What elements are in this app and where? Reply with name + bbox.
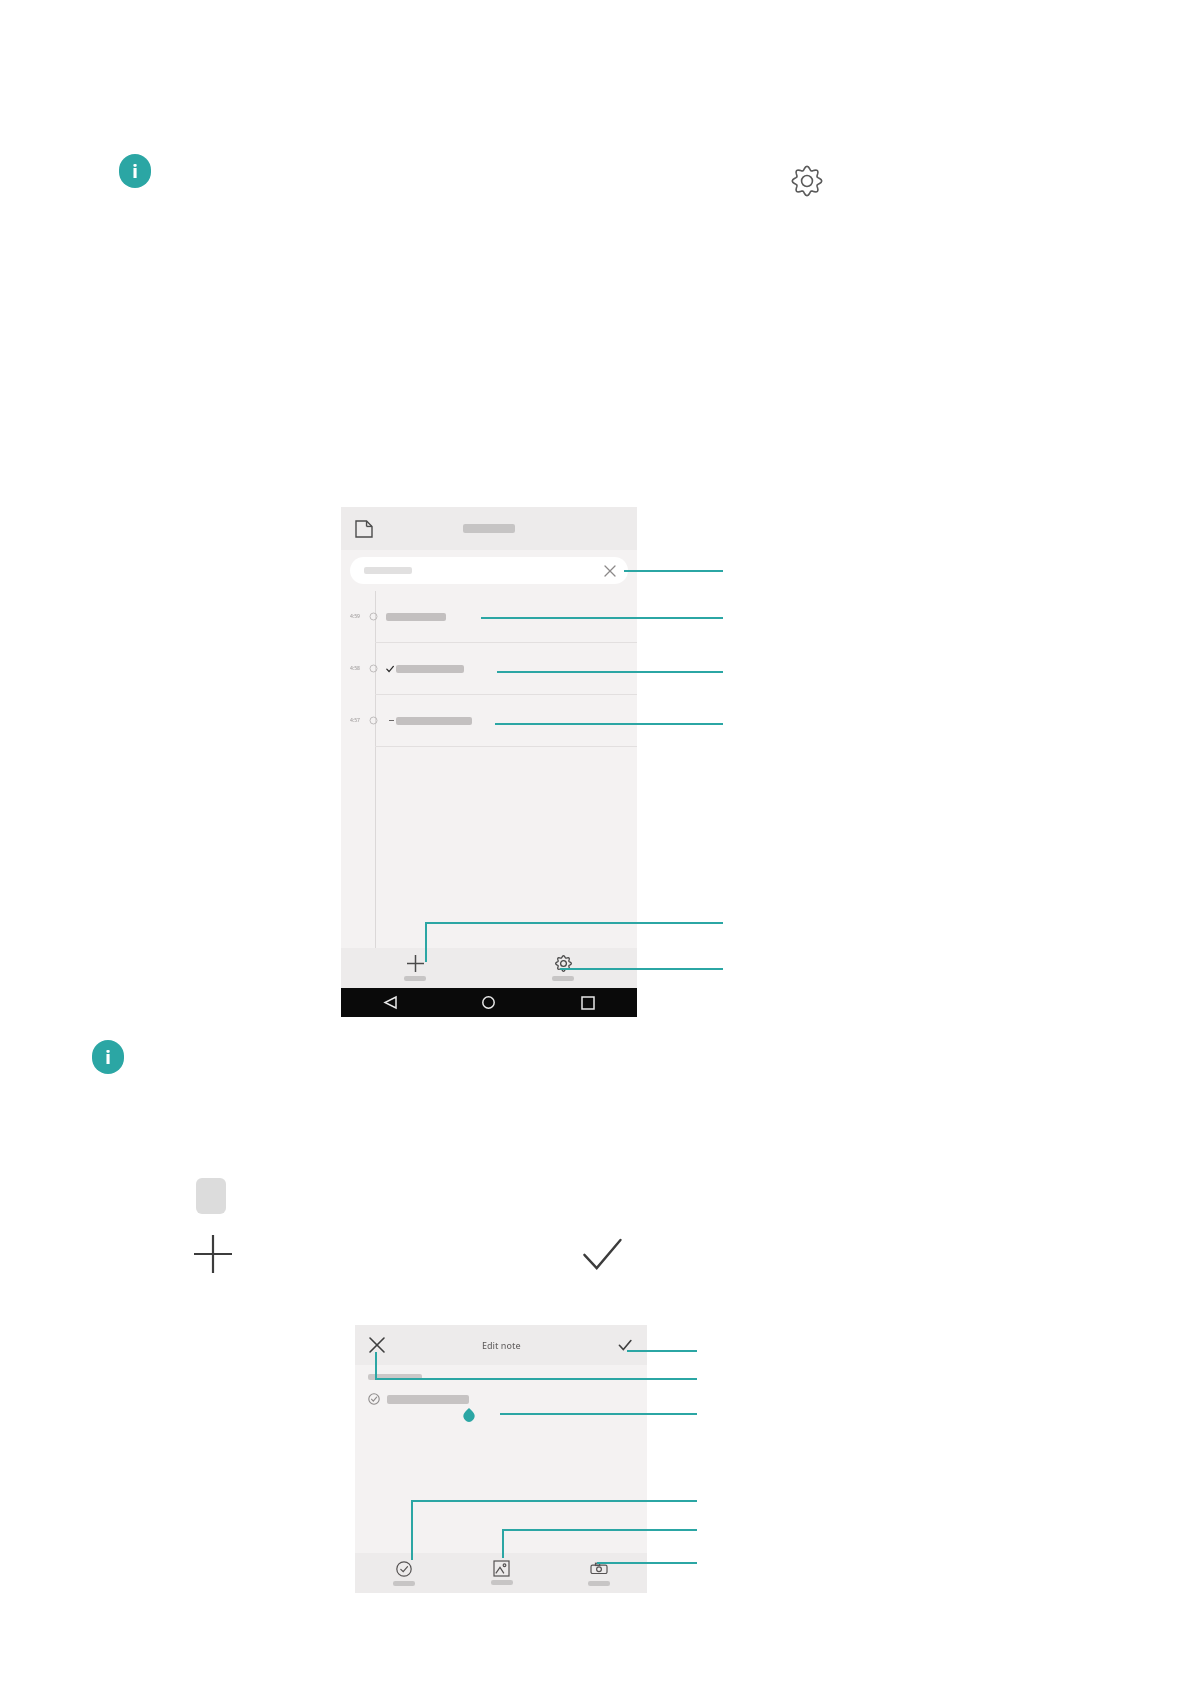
button[interactable] [550,1553,647,1593]
button[interactable]: Clear [602,563,618,579]
staticText: i [132,160,138,183]
button[interactable]: Folders [353,518,375,540]
button[interactable]: Close [366,1334,388,1356]
staticText: i [105,1046,111,1069]
button[interactable] [489,948,637,988]
button[interactable]: 4:58 [341,643,637,694]
button[interactable] [453,1553,550,1593]
button[interactable] [341,948,489,988]
button[interactable]: Clear [350,557,628,584]
staticText: 4:59 [350,613,369,620]
button[interactable]: 4:57 [341,695,637,746]
staticText: 4:57 [350,717,369,724]
staticText: 4:58 [350,665,369,672]
staticText: Edit note [482,1339,521,1351]
button[interactable]: 4:59 [341,591,637,642]
button[interactable]: Settings [789,163,825,199]
button[interactable]: Home [439,988,538,1017]
button[interactable]: Recents [538,988,637,1017]
button[interactable]: Save [614,1334,636,1356]
button[interactable] [368,1393,647,1405]
button[interactable] [355,1553,453,1593]
other: Note [119,154,151,188]
button[interactable]: Back [341,988,439,1017]
other: Note [92,1040,124,1074]
